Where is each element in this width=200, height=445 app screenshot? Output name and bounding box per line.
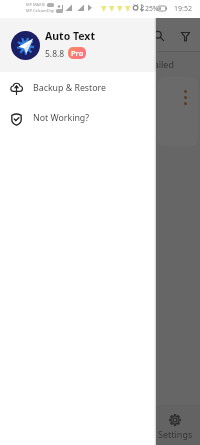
button[interactable]: Filter: [173, 24, 197, 48]
staticText: Backup & Restore: [33, 82, 106, 94]
button[interactable]: Not Working?: [0, 103, 156, 133]
staticText: MY MAXIS: [26, 2, 46, 7]
staticText: Pro: [71, 48, 84, 58]
staticText: 5.8.8: [45, 48, 65, 60]
button[interactable]: Search: [147, 24, 171, 48]
button[interactable]: Failed: [149, 58, 174, 70]
staticText: 25%: [145, 4, 159, 13]
button[interactable]: Backup & Restore: [0, 73, 156, 103]
staticText: Settings: [158, 428, 193, 440]
staticText: MY CelcomDigi: [26, 8, 55, 13]
staticText: Auto Text: [45, 29, 95, 43]
button[interactable]: Settings: [152, 414, 198, 440]
staticText: Not Working?: [33, 112, 90, 124]
button[interactable]: Pro: [68, 47, 86, 59]
button[interactable]: More options: [157, 77, 198, 146]
staticText: Failed: [149, 58, 174, 70]
button[interactable]: More options: [184, 90, 187, 105]
staticText: 19:52: [174, 4, 192, 14]
